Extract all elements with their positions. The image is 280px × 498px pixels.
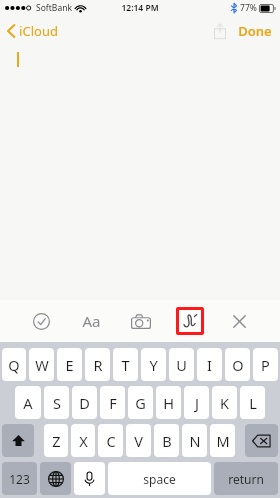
staticText: space (143, 471, 176, 487)
staticText: L (249, 393, 257, 413)
staticText: 77% (240, 2, 257, 14)
button[interactable]: Change keyboard (40, 462, 71, 495)
button[interactable]: J (184, 386, 209, 419)
button[interactable]: G (128, 386, 153, 419)
staticText: Z (52, 431, 61, 451)
staticText: 123 (9, 471, 30, 487)
staticText: J (195, 393, 199, 413)
staticText: P (261, 355, 270, 375)
staticText: T (121, 355, 130, 375)
staticText: E (65, 355, 74, 375)
staticText: 12:14 PM (121, 2, 159, 14)
button[interactable]: U (169, 348, 194, 381)
button[interactable]: K (212, 386, 237, 419)
button[interactable]: Text format (76, 306, 106, 336)
staticText: D (79, 393, 90, 413)
button[interactable]: T (113, 348, 138, 381)
staticText: A (23, 393, 33, 413)
button[interactable]: I (197, 348, 222, 381)
button[interactable]: M (210, 424, 235, 457)
staticText: W (35, 355, 49, 375)
button[interactable]: Share (208, 19, 232, 43)
staticText: C (106, 431, 116, 451)
staticText: B (162, 431, 172, 451)
staticText: V (134, 431, 143, 451)
button[interactable]: R (85, 348, 110, 381)
staticText: Done (238, 22, 272, 40)
button[interactable]: Scribble (179, 310, 201, 332)
button[interactable]: L (240, 386, 265, 419)
button[interactable]: P (253, 348, 278, 381)
staticText: SoftBank (36, 2, 72, 14)
button[interactable]: space (108, 462, 211, 495)
staticText: K (220, 393, 229, 413)
staticText: U (176, 355, 187, 375)
button[interactable]: Camera (126, 306, 156, 336)
button[interactable]: F (100, 386, 125, 419)
staticText: Aa (82, 311, 101, 331)
button[interactable]: N (182, 424, 207, 457)
staticText: X (79, 431, 88, 451)
staticText: iCloud (19, 22, 58, 40)
staticText: S (53, 393, 61, 413)
button[interactable]: O (225, 348, 250, 381)
button[interactable]: Checklist (26, 306, 56, 336)
button[interactable]: X (71, 424, 95, 457)
button[interactable]: B (154, 424, 179, 457)
staticText: F (109, 393, 117, 413)
button[interactable]: Backspace (245, 424, 278, 457)
button[interactable]: H (156, 386, 181, 419)
button[interactable]: V (126, 424, 151, 457)
button[interactable]: Close keyboard (224, 306, 254, 336)
button[interactable]: A (15, 386, 41, 419)
button[interactable]: W (29, 348, 54, 381)
staticText: H (163, 393, 174, 413)
button[interactable]: Y (141, 348, 166, 381)
staticText: return (228, 471, 264, 487)
button[interactable]: Dictation (74, 462, 105, 495)
button[interactable]: return (214, 462, 278, 495)
staticText: M (216, 431, 230, 451)
staticText: Q (8, 355, 20, 375)
button[interactable]: iCloud (0, 18, 66, 44)
staticText: Y (149, 355, 158, 375)
button[interactable]: E (57, 348, 82, 381)
staticText: G (135, 393, 146, 413)
staticText: I (207, 355, 212, 375)
button[interactable]: D (72, 386, 97, 419)
button[interactable]: Done (232, 18, 280, 44)
staticText: R (93, 355, 103, 375)
button[interactable]: 123 (2, 462, 37, 495)
button[interactable]: C (98, 424, 123, 457)
staticText: N (189, 431, 201, 451)
staticText: O (232, 355, 244, 375)
button[interactable]: Shift (2, 424, 34, 457)
button[interactable]: Q (2, 348, 26, 381)
button[interactable]: Z (44, 424, 68, 457)
button[interactable]: S (44, 386, 69, 419)
